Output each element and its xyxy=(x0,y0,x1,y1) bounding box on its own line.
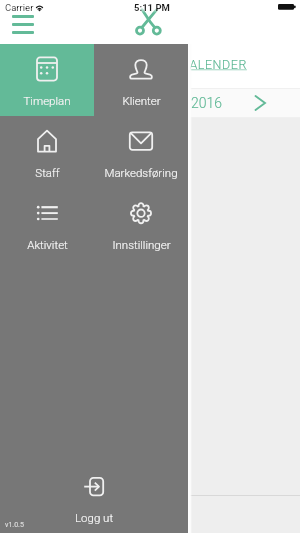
other: App logo xyxy=(134,6,166,38)
staticText: 5:11 PM xyxy=(134,2,170,13)
staticText: Staff xyxy=(35,166,60,179)
staticText: Klienter xyxy=(122,94,161,107)
staticText: Timeplan xyxy=(23,94,71,107)
button[interactable]: Klienter xyxy=(94,44,188,116)
staticText: Innstillinger xyxy=(112,238,171,251)
staticText: Logg ut xyxy=(75,511,114,524)
staticText: Carrier xyxy=(5,2,34,13)
staticText: v1.0.5 xyxy=(5,521,24,529)
button[interactable]: Logg ut xyxy=(0,461,188,533)
button[interactable]: Innstillinger xyxy=(94,188,188,260)
button[interactable]: Aktivitet xyxy=(0,188,94,260)
button[interactable]: Open navigation menu xyxy=(12,15,34,34)
staticText: JUNI 2016 xyxy=(157,95,223,111)
button[interactable]: JUNI 2016 xyxy=(0,88,300,118)
button[interactable]: Markedsføring xyxy=(94,116,188,188)
button[interactable]: Timeplan xyxy=(0,44,94,116)
button[interactable]: Staff xyxy=(0,116,94,188)
staticText: Aktivitet xyxy=(27,238,68,251)
staticText: Markedsføring xyxy=(104,166,178,179)
button[interactable]: KALENDER xyxy=(181,57,247,72)
